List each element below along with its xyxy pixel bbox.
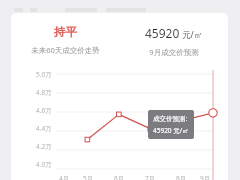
- staticText: 4.4万: [36, 124, 52, 133]
- staticText: 持平: [54, 25, 77, 39]
- staticText: 6月: [114, 174, 125, 180]
- staticText: 7月: [145, 174, 156, 180]
- staticText: 8月: [176, 174, 187, 180]
- staticText: 45920 元/㎡: [153, 126, 189, 135]
- staticText: 5.0万: [36, 70, 52, 79]
- staticText: 成交价预测:: [153, 114, 188, 123]
- button[interactable]: 成交价预测:: [153, 114, 189, 135]
- staticText: 5月: [83, 174, 94, 180]
- staticText: 4.0万: [36, 160, 52, 169]
- staticText: 9月: [200, 174, 211, 180]
- staticText: 9月成交价预测: [149, 47, 199, 57]
- staticText: 4.2万: [36, 142, 52, 151]
- staticText: 45920: [145, 25, 180, 41]
- staticText: 元/㎡: [182, 29, 203, 41]
- button[interactable]: 持平: [11, 13, 228, 180]
- staticText: 未来60天成交价走势: [31, 45, 100, 55]
- staticText: 4月: [59, 174, 70, 180]
- staticText: 4.8万: [36, 88, 52, 97]
- staticText: 4.6万: [36, 106, 52, 115]
